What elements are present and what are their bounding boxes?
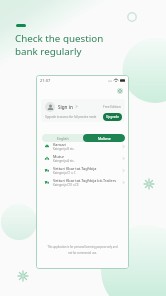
button[interactable]: Maltese (83, 134, 125, 142)
button[interactable]: Karozzi (36, 140, 129, 152)
staticText: Kategorija A etc. (53, 159, 75, 163)
button[interactable]: Settings (116, 87, 124, 95)
staticText: Karozzi (53, 142, 66, 147)
button[interactable]: English (42, 134, 83, 142)
staticText: Kategorija B etc. (53, 147, 75, 151)
staticText: English (57, 136, 69, 141)
staticText: Maltese (98, 136, 111, 141)
staticText: 21:07 (40, 78, 51, 83)
staticText: Check the question bank regularly (15, 32, 104, 58)
button[interactable]: Mutur (36, 152, 129, 164)
staticText: Free Edition (103, 105, 121, 109)
staticText: Kategorija C1 u C (53, 171, 76, 175)
button[interactable]: Vetturi Kbar tat-Tagħbija (36, 164, 129, 176)
staticText: Kategorija C1E u CE (53, 183, 79, 187)
button[interactable]: Upgrade (103, 113, 122, 121)
button[interactable]: Vetturi Kbar tat-Tagħbija bit-Trailers (36, 176, 129, 188)
button[interactable]: Sign in (41, 100, 125, 113)
staticText: Upgrade to access the full practice mode (45, 115, 97, 119)
staticText: Mutur (53, 154, 65, 159)
staticText: This application is for personal learnin… (43, 245, 122, 255)
staticText: Vetturi Kbar tat-Tagħbija (53, 166, 97, 171)
staticText: Sign in (58, 104, 73, 110)
staticText: Upgrade (106, 115, 120, 119)
staticText: Vetturi Kbar tat-Tagħbija bit-Trailers (53, 178, 117, 183)
